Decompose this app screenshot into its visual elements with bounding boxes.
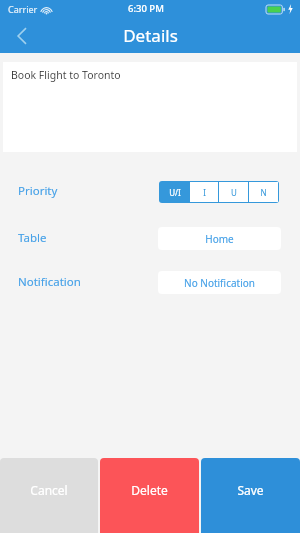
staticText: U/I: [169, 187, 181, 198]
staticText: Home: [205, 232, 234, 246]
button[interactable]: N: [249, 182, 278, 202]
staticText: Table: [18, 230, 47, 246]
staticText: Save: [237, 482, 264, 498]
button[interactable]: No Notification: [158, 271, 281, 294]
staticText: N: [260, 187, 267, 198]
staticText: I: [203, 187, 206, 198]
staticText: Carrier: [8, 3, 38, 15]
staticText: Details: [123, 24, 178, 47]
button[interactable]: Back: [0, 18, 44, 53]
button[interactable]: U/I: [160, 182, 189, 202]
staticText: Book Flight to Toronto: [11, 68, 121, 82]
button[interactable]: I: [190, 182, 218, 202]
button[interactable]: Home: [158, 227, 281, 250]
button[interactable]: U: [219, 182, 248, 202]
button[interactable]: Book Flight to Toronto: [3, 62, 297, 152]
staticText: Notification: [18, 274, 81, 290]
staticText: Delete: [131, 482, 168, 498]
staticText: Priority: [18, 183, 58, 199]
staticText: No Notification: [184, 276, 255, 290]
staticText: Cancel: [30, 482, 68, 498]
staticText: 6:30 PM: [128, 2, 164, 15]
button[interactable]: Save: [201, 458, 300, 533]
staticText: U: [231, 187, 237, 198]
button[interactable]: Delete: [100, 458, 199, 533]
button[interactable]: Cancel: [0, 458, 98, 533]
